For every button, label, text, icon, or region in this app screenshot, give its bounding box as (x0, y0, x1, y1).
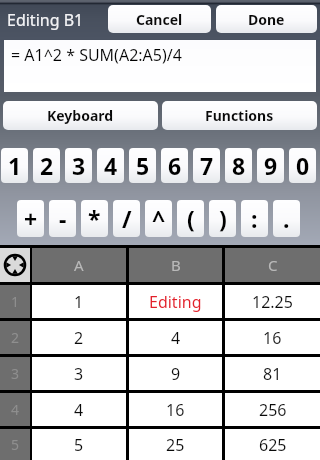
staticText: 8 (232, 150, 246, 181)
staticText: + (24, 203, 38, 234)
button[interactable]: 2 (32, 321, 126, 354)
staticText: Cancel (136, 10, 183, 29)
staticText: 7 (200, 150, 214, 181)
staticText: = A1^2 * SUM(A2:A5)/4 (11, 44, 182, 66)
button[interactable]: Done (216, 5, 317, 33)
staticText: 5 (136, 150, 150, 181)
staticText: 4 (171, 327, 181, 349)
staticText: 1 (8, 150, 22, 181)
button[interactable]: = A1^2 * SUM(A2:A5)/4 (4, 40, 316, 92)
button[interactable]: 16 (129, 393, 222, 426)
staticText: 16 (263, 327, 282, 349)
button[interactable]: ^ (145, 200, 172, 237)
button[interactable]: 1 (0, 285, 30, 318)
button[interactable]: 4 (0, 393, 30, 426)
button[interactable]: 9 (257, 148, 284, 183)
staticText: 3 (72, 150, 86, 181)
button[interactable]: 25 (129, 429, 222, 460)
staticText: A (74, 255, 84, 275)
button[interactable]: / (113, 200, 140, 237)
button[interactable]: Functions (162, 101, 317, 130)
button[interactable]: : (241, 200, 268, 237)
button[interactable]: 4 (97, 148, 124, 183)
staticText: 0 (296, 150, 310, 181)
staticText: Keyboard (47, 106, 114, 125)
staticText: / (122, 203, 132, 234)
button[interactable]: 81 (225, 357, 320, 390)
button[interactable]: 1 (32, 285, 126, 318)
button[interactable]: Keyboard (3, 101, 158, 130)
staticText: 2 (11, 328, 20, 347)
staticText: 16 (166, 399, 185, 421)
button[interactable]: 5 (0, 429, 30, 460)
button[interactable]: 2 (0, 321, 30, 354)
button[interactable]: 3 (65, 148, 92, 183)
staticText: * (88, 203, 101, 234)
staticText: Editing (149, 291, 202, 313)
staticText: C (268, 255, 278, 275)
button[interactable]: 16 (225, 321, 320, 354)
button[interactable]: 2 (33, 148, 60, 183)
staticText: 5 (74, 434, 84, 456)
button[interactable]: . (273, 200, 300, 237)
button[interactable]: Cancel (108, 5, 211, 33)
button[interactable]: B (129, 248, 222, 282)
button[interactable]: C (225, 248, 320, 282)
button[interactable]: 9 (129, 357, 222, 390)
staticText: ) (219, 203, 227, 234)
button[interactable]: 3 (0, 357, 30, 390)
button[interactable]: 7 (193, 148, 220, 183)
staticText: 5 (11, 435, 20, 454)
staticText: 256 (259, 399, 287, 421)
staticText: 12.25 (252, 291, 293, 313)
staticText: 81 (263, 363, 282, 385)
button[interactable]: A (32, 248, 126, 282)
staticText: 4 (74, 399, 84, 421)
staticText: 3 (74, 363, 84, 385)
button[interactable]: - (49, 200, 76, 237)
staticText: 2 (74, 327, 84, 349)
button[interactable]: 8 (225, 148, 252, 183)
staticText: 4 (11, 400, 20, 419)
staticText: B (171, 255, 181, 275)
button[interactable]: 6 (161, 148, 188, 183)
staticText: Done (248, 10, 285, 29)
button[interactable]: 1 (1, 148, 28, 183)
button[interactable]: 3 (32, 357, 126, 390)
staticText: 1 (11, 292, 20, 311)
staticText: 6 (168, 150, 182, 181)
staticText: 4 (104, 150, 118, 181)
staticText: - (59, 203, 67, 234)
button[interactable]: 4 (32, 393, 126, 426)
button[interactable]: 256 (225, 393, 320, 426)
staticText: 3 (11, 364, 20, 383)
button[interactable]: 4 (129, 321, 222, 354)
button[interactable]: Select all cells (0, 248, 30, 282)
button[interactable]: 12.25 (225, 285, 320, 318)
button[interactable]: 625 (225, 429, 320, 460)
button[interactable]: * (81, 200, 108, 237)
button[interactable]: ( (177, 200, 204, 237)
staticText: . (283, 203, 290, 234)
button[interactable]: Editing (129, 285, 222, 318)
staticText: Editing B1 (7, 9, 84, 31)
staticText: ( (187, 203, 195, 234)
staticText: Functions (205, 106, 274, 125)
staticText: 9 (171, 363, 181, 385)
staticText: : (251, 203, 258, 234)
button[interactable]: 0 (289, 148, 316, 183)
staticText: 1 (74, 291, 84, 313)
button[interactable]: 5 (32, 429, 126, 460)
button[interactable]: + (17, 200, 44, 237)
button[interactable]: ) (209, 200, 236, 237)
staticText: ^ (152, 203, 166, 234)
staticText: 625 (259, 434, 287, 456)
staticText: 9 (264, 150, 278, 181)
staticText: 25 (166, 434, 185, 456)
staticText: 2 (40, 150, 54, 181)
button[interactable]: 5 (129, 148, 156, 183)
